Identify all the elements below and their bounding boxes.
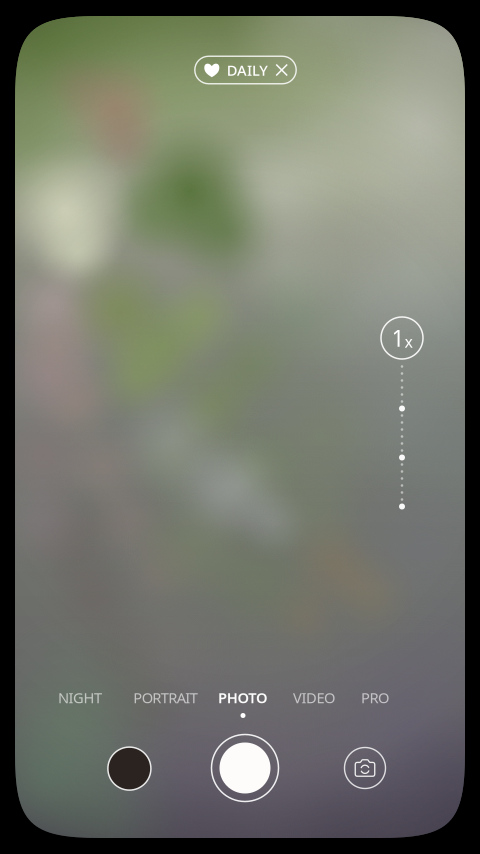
button[interactable]: NIGHT [50,686,110,722]
button[interactable]: PHOTO [210,686,276,722]
staticText: PRO [361,688,389,707]
button[interactable]: DAILY [195,56,296,84]
staticText: PHOTO [218,688,268,707]
button[interactable]: Switch camera [344,747,385,788]
staticText: VIDEO [293,688,335,707]
staticText: 1 [391,323,404,353]
staticText: x [404,331,412,352]
button[interactable]: PORTRAIT [125,686,206,722]
button[interactable]: PRO [353,686,397,722]
staticText: PORTRAIT [133,688,198,707]
staticText: NIGHT [58,688,102,707]
staticText: DAILY [227,60,268,80]
button[interactable]: VIDEO [285,686,343,722]
button[interactable]: Zoom 1x [381,317,423,359]
button[interactable]: Take photo [210,733,280,803]
button[interactable]: Photo library [108,747,151,790]
